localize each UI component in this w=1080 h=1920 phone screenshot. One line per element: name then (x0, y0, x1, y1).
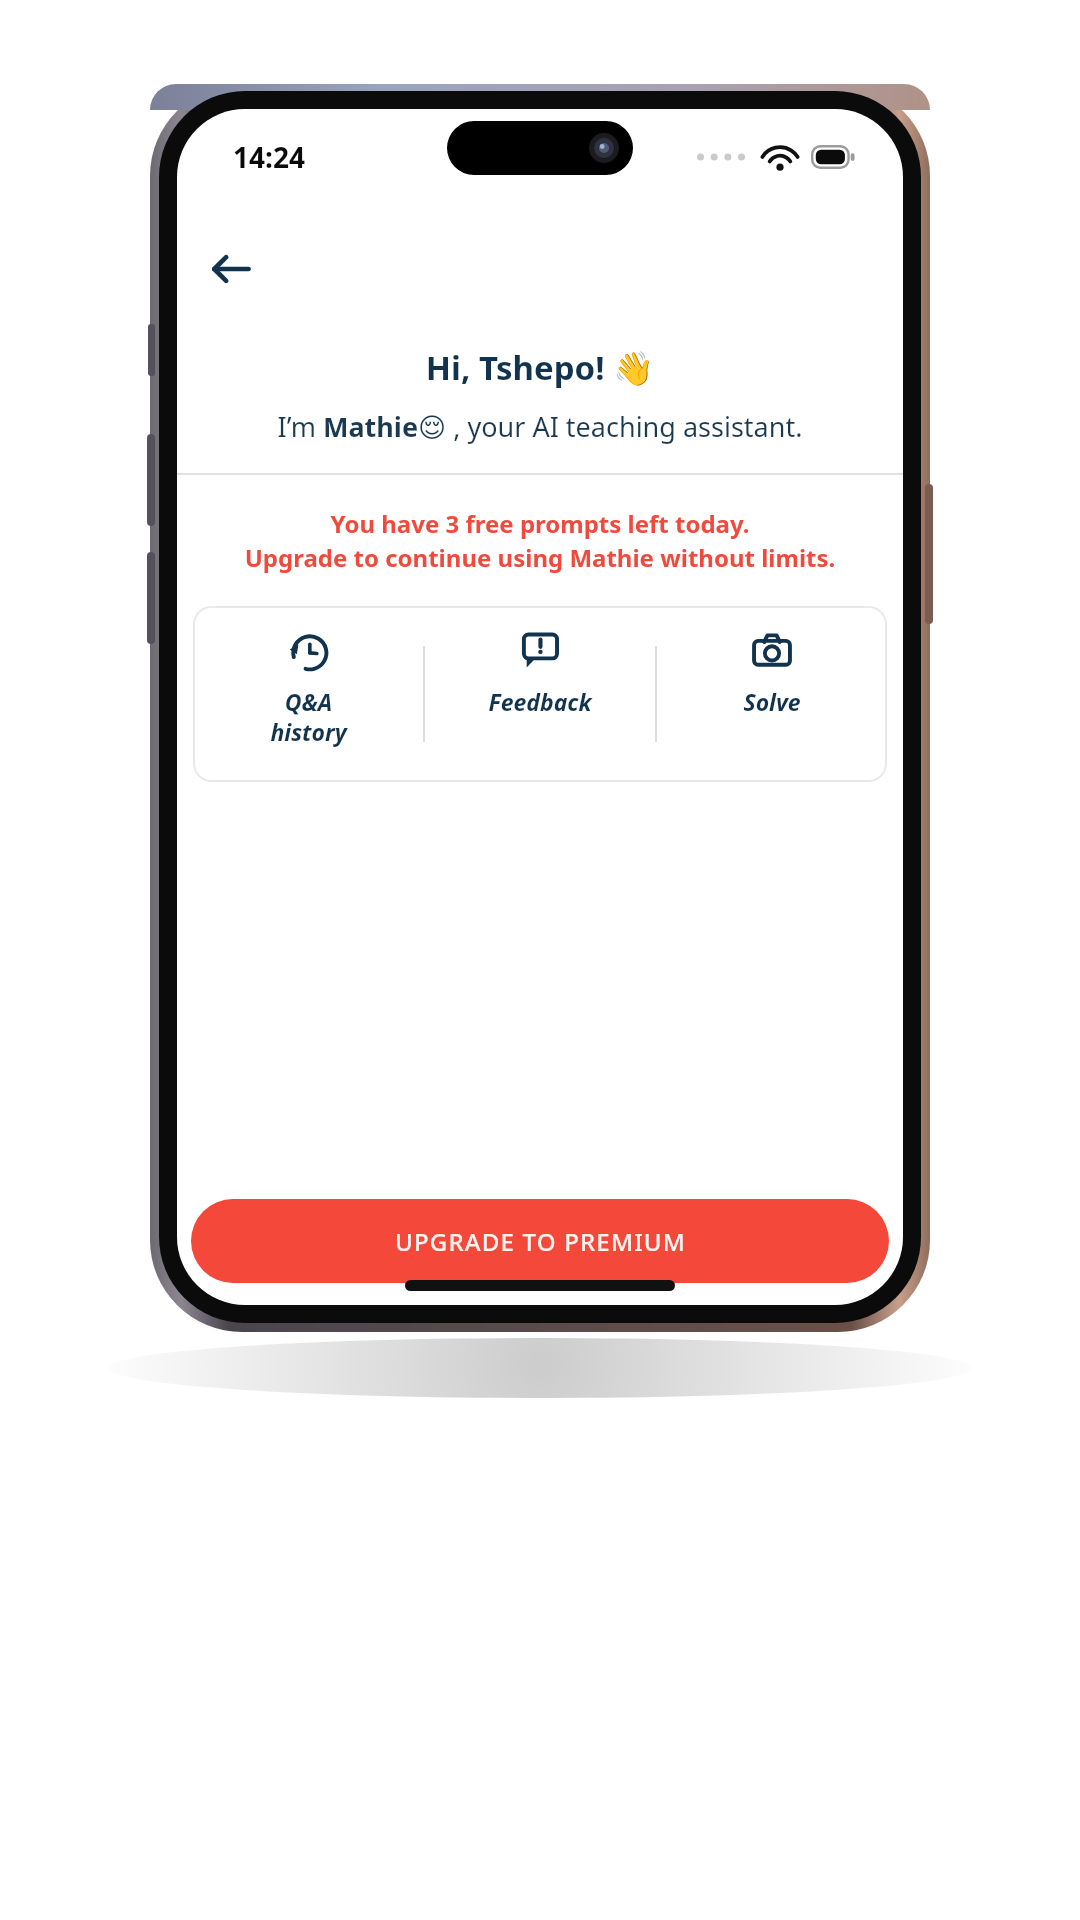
staticText: UPGRADE TO PREMIUM (395, 1225, 686, 1258)
button[interactable]: Feedback (425, 606, 655, 782)
staticText: Feedback (488, 686, 592, 717)
staticText: Hi, Tshepo! 👋 (177, 345, 903, 390)
staticText: Q&A history (270, 686, 347, 747)
staticText: Solve (743, 686, 801, 717)
button[interactable]: Q and A history (193, 606, 423, 782)
other: Solve (749, 628, 795, 674)
other: Feedback (517, 628, 563, 674)
staticText: I’m Mathie😌 , your AI teaching assistant… (177, 408, 903, 445)
other: Q and A history (285, 628, 331, 674)
button[interactable]: Back (199, 237, 263, 301)
staticText: 14:24 (233, 138, 305, 176)
button[interactable]: Solve (657, 606, 887, 782)
button[interactable]: UPGRADE TO PREMIUM (191, 1199, 889, 1283)
staticText: You have 3 free prompts left today. Upgr… (193, 507, 887, 574)
